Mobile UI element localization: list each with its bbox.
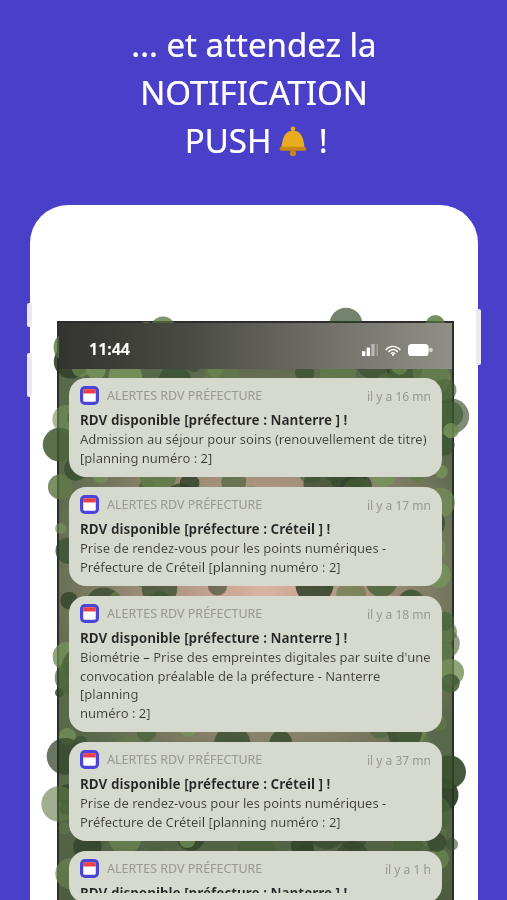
staticText: Prise de rendez-vous pour les points num… xyxy=(80,539,387,557)
button[interactable]: Alertes RDV Préfecture app icon xyxy=(69,487,442,586)
staticText: 11:44 xyxy=(89,338,131,360)
staticText: Préfecture de Créteil [planning numéro :… xyxy=(80,813,341,831)
staticText: ... et attendez la xyxy=(131,22,377,67)
staticText: Admission au séjour pour soins (renouvel… xyxy=(80,430,427,448)
staticText: il y a 17 mn xyxy=(367,497,431,513)
staticText: ALERTES RDV PRÉFECTURE xyxy=(107,387,263,404)
staticText: RDV disponible [préfecture : Créteil ] ! xyxy=(80,775,331,793)
staticText: numéro : 2] xyxy=(80,704,151,722)
button[interactable]: Alertes RDV Préfecture app icon xyxy=(69,378,442,477)
staticText: ALERTES RDV PRÉFECTURE xyxy=(107,605,263,622)
button[interactable]: Alertes RDV Préfecture app icon xyxy=(69,851,442,900)
staticText: il y a 16 mn xyxy=(367,388,431,404)
staticText: ! xyxy=(310,118,328,163)
other: Alertes RDV Préfecture app icon xyxy=(80,859,99,878)
staticText: ALERTES RDV PRÉFECTURE xyxy=(107,751,263,768)
staticText: il y a 18 mn xyxy=(367,606,431,622)
staticText: RDV disponible [préfecture : Nanterre ] … xyxy=(80,411,348,429)
staticText: ALERTES RDV PRÉFECTURE xyxy=(107,860,263,877)
staticText: RDV disponible [préfecture : Nanterre ] … xyxy=(80,884,348,893)
staticText: Préfecture de Créteil [planning numéro :… xyxy=(80,558,341,576)
button[interactable]: Alertes RDV Préfecture app icon xyxy=(69,742,442,841)
button[interactable]: Alertes RDV Préfecture app icon xyxy=(69,596,442,732)
staticText: Biométrie – Prise des empreintes digital… xyxy=(80,648,431,666)
staticText: NOTIFICATION xyxy=(140,70,368,115)
staticText: il y a 1 h xyxy=(385,861,431,877)
other: Alertes RDV Préfecture app icon xyxy=(80,604,99,623)
other: Alertes RDV Préfecture app icon xyxy=(80,386,99,405)
staticText: Prise de rendez-vous pour les points num… xyxy=(80,794,387,812)
staticText: PUSH xyxy=(180,118,276,163)
staticText: il y a 37 mn xyxy=(367,752,431,768)
staticText: RDV disponible [préfecture : Créteil ] ! xyxy=(80,520,331,538)
staticText: [planning numéro : 2] xyxy=(80,449,213,467)
staticText: ALERTES RDV PRÉFECTURE xyxy=(107,496,263,513)
staticText: convocation préalable de la préfecture -… xyxy=(80,667,431,703)
other: Alertes RDV Préfecture app icon xyxy=(80,495,99,514)
other: Alertes RDV Préfecture app icon xyxy=(80,750,99,769)
staticText: RDV disponible [préfecture : Nanterre ] … xyxy=(80,629,348,647)
